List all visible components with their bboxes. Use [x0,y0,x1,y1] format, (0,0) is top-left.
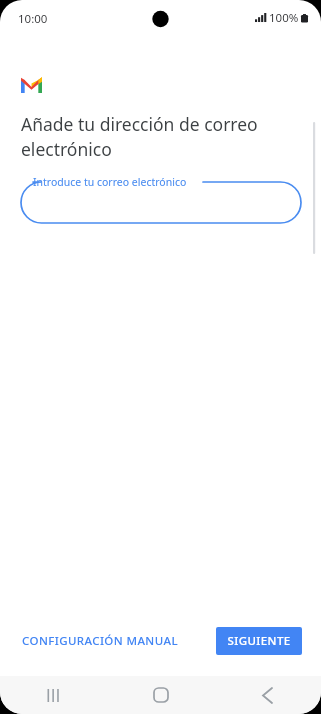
button[interactable]: Introduce tu correo electrónico [21,174,301,223]
button[interactable]: CONFIGURACIÓN MANUAL [15,625,185,657]
button[interactable]: Recent apps [0,676,107,714]
staticText: Añade tu dirección de correo electrónico [21,112,258,161]
staticText: CONFIGURACIÓN MANUAL [22,633,178,649]
button[interactable]: Home [107,676,214,714]
staticText: SIGUIENTE [227,633,291,649]
staticText: 100% [269,10,299,26]
staticText: Introduce tu correo electrónico [33,175,187,189]
button[interactable]: Back [214,676,321,714]
button[interactable]: SIGUIENTE [216,627,302,655]
staticText: 10:00 [18,11,48,27]
